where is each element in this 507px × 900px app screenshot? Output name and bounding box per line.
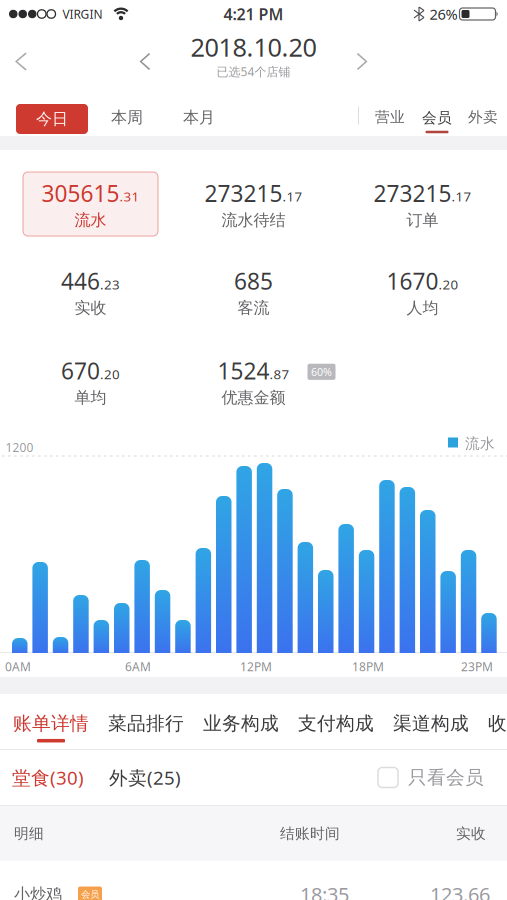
staticText: 4:21 PM bbox=[223, 3, 283, 25]
staticText: 会员 bbox=[422, 109, 452, 127]
staticText: 18PM bbox=[352, 658, 384, 674]
staticText: 人均 bbox=[406, 298, 438, 318]
button[interactable]: 业务构成 bbox=[203, 712, 279, 735]
staticText: VIRGIN bbox=[62, 6, 102, 22]
staticText: 273215 bbox=[204, 178, 282, 208]
staticText: 6AM bbox=[125, 658, 151, 674]
staticText: 123.66 bbox=[430, 881, 490, 900]
staticText: 18:35 bbox=[300, 881, 349, 900]
staticText: 业务构成 bbox=[203, 712, 279, 735]
staticText: 客流 bbox=[237, 298, 269, 318]
staticText: 只看会员 bbox=[408, 766, 484, 789]
staticText: 本周 bbox=[111, 108, 143, 127]
staticText: 60% bbox=[311, 365, 332, 379]
staticText: 菜品排行 bbox=[108, 712, 184, 735]
staticText: 446 bbox=[61, 266, 100, 296]
button[interactable]: 外卖(25) bbox=[84, 765, 181, 790]
button[interactable]: 273215 bbox=[338, 178, 507, 230]
button[interactable]: 账单详情 bbox=[13, 712, 89, 742]
staticText: 26% bbox=[429, 4, 457, 24]
button[interactable]: 营业 bbox=[359, 100, 414, 130]
button[interactable]: 小炒鸡 bbox=[0, 861, 507, 900]
button[interactable]: 446 bbox=[0, 266, 169, 318]
button[interactable]: 收银 bbox=[488, 712, 507, 735]
staticText: 今日 bbox=[36, 109, 68, 129]
staticText: 12PM bbox=[240, 658, 272, 674]
button[interactable]: 305615 bbox=[11, 172, 158, 236]
staticText: 273215 bbox=[373, 178, 451, 208]
staticText: 会员 bbox=[81, 888, 99, 900]
button[interactable]: 堂食(30) bbox=[12, 765, 84, 790]
staticText: 收银 bbox=[488, 712, 507, 735]
staticText: 670 bbox=[61, 356, 100, 386]
staticText: 流水 bbox=[465, 434, 495, 452]
staticText: 流水待结 bbox=[221, 210, 285, 230]
staticText: 305615 bbox=[41, 178, 119, 208]
button[interactable]: Back bbox=[0, 44, 25, 78]
button[interactable]: 本周 bbox=[88, 100, 166, 130]
staticText: 优惠金额 bbox=[221, 388, 285, 408]
button[interactable]: 今日 bbox=[16, 100, 88, 130]
staticText: 明细 bbox=[14, 824, 44, 842]
button[interactable]: 本月 bbox=[166, 100, 232, 130]
staticText: 已选54个店铺 bbox=[216, 64, 290, 79]
button[interactable]: 支付构成 bbox=[298, 712, 374, 735]
staticText: 本月 bbox=[183, 108, 215, 127]
staticText: .31 bbox=[119, 187, 139, 205]
button[interactable]: 685 bbox=[169, 266, 338, 318]
button[interactable]: Previous day bbox=[131, 45, 157, 78]
button[interactable]: 1524 bbox=[169, 356, 338, 408]
staticText: .20 bbox=[438, 275, 458, 293]
button[interactable]: 菜品排行 bbox=[108, 712, 184, 735]
staticText: .17 bbox=[451, 187, 471, 205]
staticText: 堂食(30) bbox=[12, 765, 84, 790]
button[interactable]: 外卖 bbox=[460, 100, 507, 130]
staticText: 1524 bbox=[217, 356, 269, 386]
staticText: 渠道构成 bbox=[393, 712, 469, 735]
staticText: 实收 bbox=[74, 298, 106, 318]
button[interactable]: Next day bbox=[350, 45, 375, 78]
staticText: .17 bbox=[282, 187, 302, 205]
staticText: 实收 bbox=[456, 824, 486, 842]
staticText: 1200 bbox=[5, 439, 33, 455]
staticText: 2018.10.20 bbox=[190, 30, 316, 64]
staticText: 单均 bbox=[74, 388, 106, 408]
staticText: 0AM bbox=[5, 658, 31, 674]
button[interactable]: 渠道构成 bbox=[393, 712, 469, 735]
staticText: 结账时间 bbox=[280, 824, 340, 842]
staticText: 23PM bbox=[461, 658, 493, 674]
staticText: 外卖(25) bbox=[109, 765, 181, 790]
button[interactable]: 只看会员 bbox=[378, 766, 507, 789]
staticText: 685 bbox=[234, 266, 273, 296]
button[interactable]: 670 bbox=[0, 356, 169, 408]
button[interactable]: 273215 bbox=[169, 178, 338, 230]
button[interactable]: 1670 bbox=[338, 266, 507, 318]
staticText: .23 bbox=[100, 275, 120, 293]
staticText: 外卖 bbox=[468, 108, 498, 126]
staticText: 1670 bbox=[386, 266, 438, 296]
staticText: 支付构成 bbox=[298, 712, 374, 735]
staticText: 账单详情 bbox=[13, 712, 89, 735]
staticText: 订单 bbox=[406, 210, 438, 230]
staticText: .20 bbox=[100, 365, 120, 383]
staticText: 小炒鸡 bbox=[14, 884, 62, 900]
button[interactable]: 会员 bbox=[414, 99, 460, 132]
staticText: .87 bbox=[269, 365, 289, 383]
staticText: 流水 bbox=[74, 210, 106, 230]
staticText: 营业 bbox=[375, 108, 405, 126]
